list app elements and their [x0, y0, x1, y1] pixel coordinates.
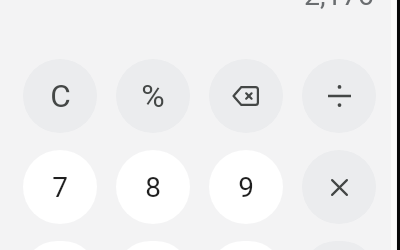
- button[interactable]: Multiply: [302, 150, 376, 224]
- staticText: 2,176: [304, 0, 374, 12]
- button[interactable]: C: [23, 59, 97, 133]
- staticText: 7: [52, 171, 68, 204]
- staticText: %: [141, 77, 165, 115]
- staticText: 9: [238, 171, 254, 204]
- button[interactable]: 7: [23, 150, 97, 224]
- button[interactable]: 5: [116, 241, 190, 250]
- staticText: 8: [145, 171, 161, 204]
- button[interactable]: 9: [209, 150, 283, 224]
- button[interactable]: Minus: [302, 241, 376, 250]
- button[interactable]: 8: [116, 150, 190, 224]
- button[interactable]: Backspace: [209, 59, 283, 133]
- button[interactable]: %: [116, 59, 190, 133]
- button[interactable]: 4: [23, 241, 97, 250]
- staticText: C: [50, 78, 71, 115]
- button[interactable]: 6: [209, 241, 283, 250]
- button[interactable]: Divide: [302, 59, 376, 133]
